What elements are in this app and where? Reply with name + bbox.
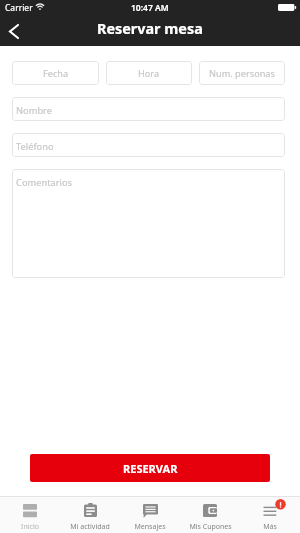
staticText: Más — [263, 522, 277, 532]
button[interactable]: Teléfono — [12, 133, 285, 157]
button[interactable]: Mi actividad — [60, 497, 120, 533]
staticText: Nombre — [16, 104, 52, 117]
button[interactable]: Comentarios — [12, 169, 285, 278]
button[interactable]: Fecha — [12, 61, 99, 85]
staticText: RESERVAR — [123, 461, 178, 476]
button[interactable]: Nombre — [12, 97, 285, 121]
button[interactable]: RESERVAR — [30, 454, 270, 482]
button[interactable]: Hora — [106, 61, 192, 85]
button[interactable]: Más — [240, 497, 300, 533]
staticText: Reservar mesa — [97, 19, 203, 39]
staticText: Carrier — [5, 2, 33, 14]
staticText: Hora — [138, 67, 160, 80]
staticText: Mensajes — [134, 522, 166, 532]
button[interactable]: Mis Cupones — [180, 497, 240, 533]
staticText: Fecha — [43, 67, 69, 80]
staticText: Comentarios — [16, 176, 73, 189]
button[interactable]: Num. personas — [199, 61, 285, 85]
staticText: 10:47 AM — [131, 2, 169, 14]
staticText: Mis Cupones — [189, 522, 232, 532]
staticText: Mi actividad — [70, 522, 110, 532]
button[interactable]: Back — [2, 17, 26, 45]
staticText: Inicio — [21, 522, 39, 532]
staticText: Teléfono — [16, 140, 54, 153]
staticText: Num. personas — [209, 67, 275, 80]
button[interactable]: Mensajes — [120, 497, 180, 533]
button[interactable]: Inicio — [0, 497, 60, 533]
